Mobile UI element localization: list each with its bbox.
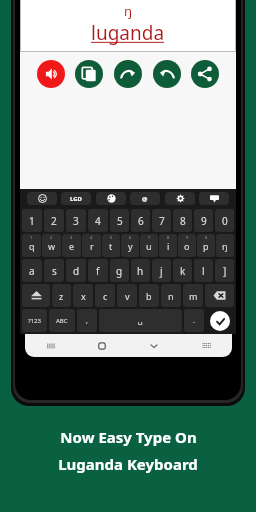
button[interactable]: x	[73, 284, 93, 307]
button[interactable]: v	[117, 284, 137, 307]
staticText: ŋ	[124, 2, 133, 20]
button[interactable]: ,	[77, 309, 97, 332]
button[interactable]: w	[42, 234, 61, 257]
button[interactable]: e	[62, 234, 81, 257]
staticText: n	[168, 290, 174, 302]
button[interactable]: 8	[173, 209, 192, 232]
staticText: u	[146, 240, 152, 252]
staticText: ?123	[28, 317, 41, 325]
button[interactable]: l	[194, 259, 213, 282]
button[interactable]: Hide keyboard	[128, 334, 180, 357]
staticText: m	[189, 290, 198, 302]
button[interactable]: Backspace	[205, 284, 234, 307]
staticText: luganda	[91, 20, 165, 46]
button[interactable]: 0	[215, 209, 234, 232]
button[interactable]: Settings	[165, 192, 195, 205]
staticText: k	[180, 264, 186, 278]
button[interactable]: Home	[76, 334, 128, 357]
button[interactable]: q	[22, 234, 41, 257]
button[interactable]: y	[121, 234, 139, 257]
button[interactable]: Copy	[75, 60, 103, 88]
button[interactable]: g	[110, 259, 129, 282]
button[interactable]: Redo	[114, 60, 142, 88]
button[interactable]: 4	[88, 209, 108, 232]
staticText: @	[142, 195, 148, 203]
button[interactable]: s	[44, 259, 64, 282]
button[interactable]: Emoji	[27, 192, 57, 205]
staticText: 2	[50, 235, 53, 240]
button[interactable]: m	[183, 284, 203, 307]
button[interactable]: u	[140, 234, 158, 257]
staticText: .	[193, 316, 195, 326]
button[interactable]: 6	[131, 209, 150, 232]
staticText: 0	[222, 214, 228, 228]
button[interactable]: Share	[191, 60, 219, 88]
staticText: 9	[201, 214, 207, 228]
staticText: z	[59, 290, 64, 302]
button[interactable]: ŋ	[216, 234, 234, 257]
button[interactable]: i	[159, 234, 177, 257]
button[interactable]: Enter	[210, 311, 230, 331]
staticText: t	[109, 240, 113, 252]
staticText: 9	[186, 235, 189, 240]
button[interactable]: Keyboard	[199, 192, 229, 205]
button[interactable]: LGD	[61, 192, 91, 205]
staticText: y	[128, 240, 133, 252]
button[interactable]: b	[139, 284, 159, 307]
button[interactable]: 2	[44, 209, 64, 232]
staticText: 3	[70, 235, 73, 240]
button[interactable]: 5	[110, 209, 129, 232]
button[interactable]: 7	[152, 209, 171, 232]
button[interactable]: 3	[66, 209, 86, 232]
staticText: 3	[73, 214, 79, 228]
staticText: q	[29, 240, 35, 252]
button[interactable]: Switch keyboard	[180, 334, 232, 357]
staticText: ]	[223, 264, 227, 278]
button[interactable]: Theme	[96, 192, 126, 205]
button[interactable]: .	[184, 309, 204, 332]
staticText: 7	[148, 235, 151, 240]
staticText: e	[69, 240, 75, 252]
staticText: Now Easy Type On	[60, 427, 197, 447]
button[interactable]: Undo	[153, 60, 181, 88]
staticText: 6	[138, 214, 144, 228]
button[interactable]: Speak	[37, 60, 65, 88]
button[interactable]: c	[95, 284, 115, 307]
staticText: ␣	[138, 316, 144, 325]
button[interactable]: k	[173, 259, 192, 282]
button[interactable]: n	[161, 284, 181, 307]
button[interactable]: o	[178, 234, 196, 257]
button[interactable]: @	[130, 192, 160, 205]
button[interactable]: h	[131, 259, 150, 282]
button[interactable]: 1	[22, 209, 42, 232]
button[interactable]: Shift	[22, 284, 50, 307]
button[interactable]: ABC	[49, 309, 75, 332]
staticText: 1	[29, 214, 35, 228]
staticText: 4	[90, 235, 93, 240]
staticText: a	[29, 264, 35, 278]
button[interactable]: t	[102, 234, 120, 257]
button[interactable]: p	[197, 234, 215, 257]
staticText: 7	[159, 214, 165, 228]
button[interactable]: a	[22, 259, 42, 282]
button[interactable]: ?123	[22, 309, 47, 332]
button[interactable]: d	[66, 259, 86, 282]
button[interactable]: ␣	[99, 309, 182, 332]
button[interactable]: ]	[215, 259, 234, 282]
staticText: g	[116, 264, 123, 278]
staticText: o	[184, 240, 190, 252]
button[interactable]: z	[52, 284, 71, 307]
button[interactable]: r	[82, 234, 101, 257]
button[interactable]: Recents	[25, 334, 76, 357]
staticText: 2	[51, 214, 57, 228]
staticText: x	[81, 290, 86, 302]
staticText: b	[146, 290, 152, 302]
staticText: l	[202, 264, 205, 278]
staticText: j	[160, 264, 163, 278]
button[interactable]: j	[152, 259, 171, 282]
staticText: 0	[205, 235, 208, 240]
button[interactable]: 9	[194, 209, 213, 232]
staticText: w	[48, 240, 56, 252]
button[interactable]: f	[88, 259, 108, 282]
staticText: r	[90, 240, 94, 252]
